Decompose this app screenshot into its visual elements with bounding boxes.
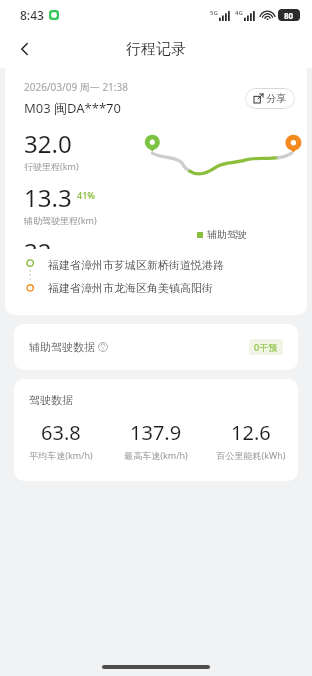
staticText: 百公里能耗(kWh) <box>216 449 286 461</box>
staticText: 2026/03/09 周一 21:38 <box>24 80 128 94</box>
staticText: 最高车速(km/h) <box>124 449 188 461</box>
staticText: 行程记录 <box>126 40 186 59</box>
staticText: 137.9 <box>130 419 182 446</box>
staticText: 平均车速(km/h) <box>29 449 93 461</box>
staticText: 32 <box>24 235 52 249</box>
staticText: 32.0 <box>24 127 72 160</box>
staticText: 63.8 <box>41 419 81 446</box>
staticText: 4G <box>235 9 243 17</box>
button[interactable]: 辅助驾驶数据 <box>14 324 298 370</box>
staticText: 8:43 <box>20 7 44 23</box>
staticText: 辅助驾驶里程(km) <box>24 214 97 226</box>
staticText: 福建省漳州市龙海区角美镇高阳街 <box>48 281 213 295</box>
staticText: 13.3 <box>24 181 72 214</box>
staticText: 行驶里程(km) <box>24 160 79 172</box>
staticText: 分享 <box>266 92 286 105</box>
staticText: M03 闽DA***70 <box>24 99 121 117</box>
staticText: 福建省漳州市芗城区新桥街道悦港路 <box>48 258 224 272</box>
staticText: 12.6 <box>231 419 271 446</box>
button[interactable]: Back <box>8 32 42 66</box>
staticText: 辅助驾驶 <box>207 228 247 241</box>
button[interactable]: 分享 <box>245 88 295 109</box>
staticText: 80 <box>284 10 294 21</box>
staticText: 辅助驾驶数据 <box>29 340 95 354</box>
staticText: 41% <box>77 189 95 201</box>
staticText: 驾驶数据 <box>29 393 73 407</box>
staticText: 5G <box>210 9 218 17</box>
staticText: 0干预 <box>254 341 278 353</box>
